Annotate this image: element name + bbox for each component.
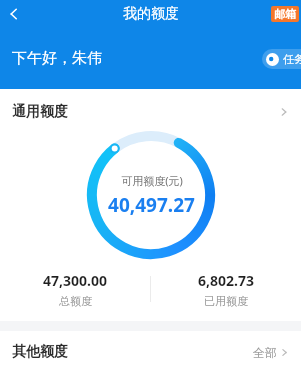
staticText: 其他额度 bbox=[12, 343, 68, 361]
staticText: 全部 bbox=[253, 345, 277, 360]
button[interactable]: 其他额度 bbox=[0, 343, 301, 361]
staticText: 总额度 bbox=[59, 294, 92, 308]
staticText: 通用额度 bbox=[12, 103, 68, 121]
button[interactable]: 47,300.00 bbox=[0, 271, 150, 308]
staticText: 我的额度 bbox=[123, 5, 179, 23]
button[interactable]: 邮箱 bbox=[271, 6, 299, 22]
button[interactable]: 6,802.73 bbox=[151, 271, 301, 308]
button[interactable]: 通用额度 bbox=[0, 97, 301, 127]
staticText: 下午好，朱伟 bbox=[12, 49, 102, 68]
staticText: 邮箱 bbox=[274, 7, 296, 21]
staticText: 任务 bbox=[283, 52, 301, 66]
staticText: 6,802.73 bbox=[198, 271, 254, 290]
staticText: 已用额度 bbox=[204, 294, 248, 308]
staticText: 40,497.27 bbox=[108, 192, 195, 218]
staticText: 47,300.00 bbox=[43, 271, 107, 290]
button[interactable]: Back bbox=[0, 0, 28, 28]
button[interactable]: 任务 bbox=[262, 49, 301, 69]
staticText: 可用额度(元) bbox=[121, 173, 183, 188]
